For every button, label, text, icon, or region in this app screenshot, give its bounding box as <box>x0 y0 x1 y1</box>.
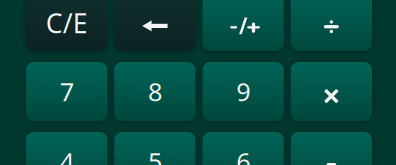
button[interactable]: Plus minus <box>202 0 284 51</box>
button[interactable]: Backspace <box>114 0 195 51</box>
staticText: 7 <box>60 75 74 108</box>
button[interactable]: 5 <box>114 132 195 165</box>
button[interactable]: Multiply <box>291 62 372 121</box>
staticText: 9 <box>236 75 250 108</box>
button[interactable]: 4 <box>26 132 107 165</box>
button[interactable]: Clear entry <box>26 0 107 51</box>
button[interactable]: Divide <box>291 0 372 51</box>
staticText: 6 <box>236 145 250 165</box>
staticText: 8 <box>148 75 162 108</box>
staticText: 4 <box>60 145 74 165</box>
staticText: 5 <box>148 145 162 165</box>
button[interactable]: 9 <box>202 62 284 121</box>
button[interactable]: Minus <box>291 132 372 165</box>
button[interactable]: 6 <box>202 132 284 165</box>
button[interactable]: 7 <box>26 62 107 121</box>
staticText: C/E <box>46 5 88 41</box>
button[interactable]: 8 <box>114 62 195 121</box>
